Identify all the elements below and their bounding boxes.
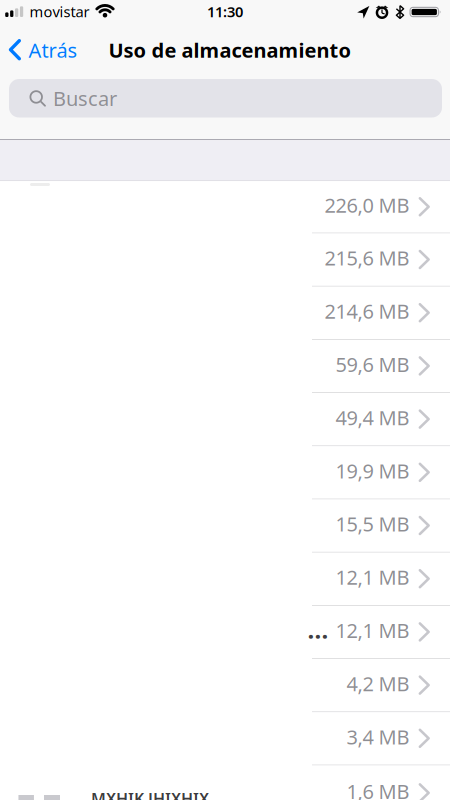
staticText: 12,1 MB [335, 617, 409, 644]
button[interactable]: 4,2 MB [0, 659, 450, 711]
button[interactable]: Buscar [9, 79, 442, 117]
staticText: 214,6 MB [324, 298, 409, 324]
button[interactable]: 3,4 MB [0, 712, 450, 765]
button[interactable]: 59,6 MB [0, 340, 450, 392]
button[interactable]: 215,6 MB [0, 233, 450, 286]
staticText: 4,2 MB [346, 670, 409, 697]
staticText: 59,6 MB [335, 351, 409, 378]
button[interactable]: 226,0 MB [0, 181, 450, 233]
staticText: 3,4 MB [346, 723, 409, 750]
staticText: 215,6 MB [324, 245, 409, 271]
staticText: 1,6 MB [346, 778, 409, 800]
button[interactable]: 19,9 MB [0, 446, 450, 499]
staticText: 226,0 MB [324, 192, 409, 218]
staticText: Uso de almacenamiento [108, 37, 351, 63]
button[interactable]: 214,6 MB [0, 287, 450, 339]
staticText: Atrás [28, 37, 77, 63]
staticText: MXHIK JHIXHIX [91, 788, 209, 800]
staticText: ... [307, 614, 328, 645]
staticText: 15,5 MB [335, 511, 409, 537]
staticText: 49,4 MB [335, 404, 409, 431]
button[interactable]: Atrás [8, 37, 77, 63]
button[interactable]: 49,4 MB [0, 393, 450, 445]
button[interactable]: 12,1 MB [0, 553, 450, 605]
staticText: 19,9 MB [335, 457, 409, 484]
staticText: 11:30 [207, 2, 243, 21]
button[interactable]: 1,6 MB [0, 765, 450, 800]
staticText: Buscar [53, 85, 117, 112]
staticText: movistar [29, 2, 89, 21]
staticText: 12,1 MB [335, 564, 409, 590]
button[interactable]: ... [0, 606, 450, 658]
button[interactable]: 15,5 MB [0, 499, 450, 552]
